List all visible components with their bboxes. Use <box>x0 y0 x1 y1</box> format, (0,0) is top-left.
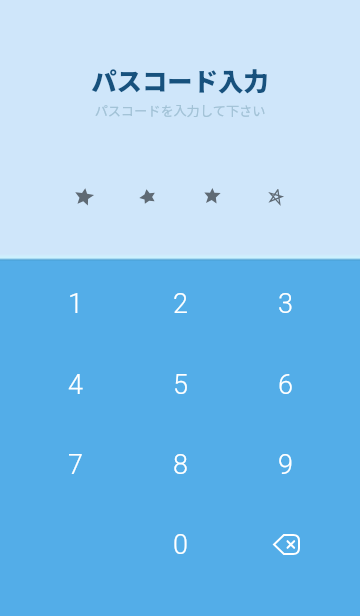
staticText: 0 <box>173 529 188 561</box>
staticText: 5 <box>173 369 188 401</box>
button[interactable]: 6 <box>245 355 325 415</box>
button[interactable]: 8 <box>140 435 220 495</box>
button[interactable]: 5 <box>140 355 220 415</box>
staticText: 1 <box>68 288 83 320</box>
staticText: 9 <box>278 449 293 481</box>
button[interactable]: 3 <box>245 274 325 334</box>
button[interactable]: Entered digit <box>68 181 100 213</box>
button[interactable]: 4 <box>35 355 115 415</box>
staticText: 3 <box>278 288 293 320</box>
button[interactable]: 9 <box>245 435 325 495</box>
button[interactable]: Entered digit <box>196 180 228 212</box>
button[interactable]: Empty digit <box>260 181 292 213</box>
staticText: 2 <box>173 288 188 320</box>
staticText: 8 <box>173 449 188 481</box>
button[interactable]: 1 <box>35 274 115 334</box>
button[interactable]: 2 <box>140 274 220 334</box>
button[interactable]: 7 <box>35 435 115 495</box>
button[interactable]: Entered digit <box>132 181 164 213</box>
button[interactable]: Delete <box>245 515 325 575</box>
staticText: 6 <box>278 369 293 401</box>
staticText: 7 <box>68 449 83 481</box>
staticText: 4 <box>68 369 83 401</box>
staticText: パスコードを入力して下さい <box>94 101 266 120</box>
staticText: パスコード入力 <box>91 62 269 99</box>
button[interactable]: 0 <box>140 515 220 575</box>
